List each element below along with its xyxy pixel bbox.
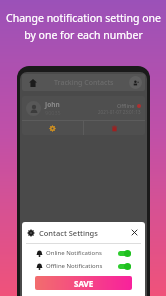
staticText: SAVE [74, 278, 94, 289]
staticText: Online Notifications [46, 249, 102, 257]
button[interactable]: SAVE [35, 276, 132, 290]
staticText: Change notification setting one [6, 11, 161, 25]
button[interactable]: John [22, 96, 145, 135]
button[interactable]: Add contact [129, 76, 142, 89]
button[interactable]: Home [25, 75, 40, 90]
staticText: Offline [117, 102, 135, 109]
staticText: by one for each number [24, 28, 143, 42]
staticText: Tracking Contacts [54, 78, 114, 88]
button[interactable]: Offline Notifications [36, 262, 131, 270]
button[interactable]: Close [129, 227, 140, 238]
button[interactable]: Delete [84, 121, 145, 135]
staticText: John [45, 100, 60, 109]
button[interactable]: Settings [22, 121, 83, 135]
staticText: Offline Notifications [46, 262, 103, 270]
staticText: Contact Settings [39, 228, 98, 238]
button[interactable]: Online Notifications [36, 249, 131, 257]
staticText: 2021-01-07 23:01:13 [98, 109, 141, 115]
